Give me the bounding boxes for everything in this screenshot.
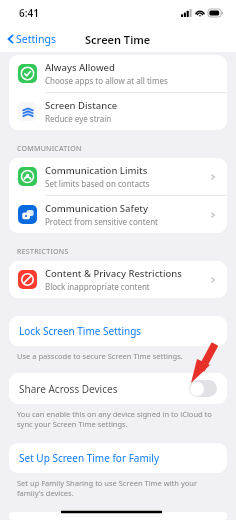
staticText: Communication Limits [45,164,148,177]
button[interactable]: Turn Off App & Website Activity [9,512,227,520]
button[interactable]: Screen Distance [9,93,227,130]
staticText: Set up Family Sharing to use Screen Time… [17,478,214,498]
button[interactable]: Settings [0,29,62,49]
button[interactable]: Always Allowed [9,55,227,92]
staticText: Set Up Screen Time for Family [19,451,160,465]
staticText: Screen Distance [45,99,118,112]
staticText: Lock Screen Time Settings [19,324,142,338]
button[interactable]: Set Up Screen Time for Family [9,443,227,473]
staticText: You can enable this on any device signed… [17,409,214,429]
staticText: Use a passcode to secure Screen Time set… [17,351,183,361]
button[interactable]: Lock Screen Time Settings [9,316,227,346]
staticText: 6:41 [19,6,39,20]
staticText: Set limits based on contacts [45,178,150,189]
button[interactable]: Communication Limits [9,158,227,195]
staticText: Reduce eye strain [45,113,112,124]
staticText: Block inappropriate content [45,281,150,292]
button[interactable]: Content & Privacy Restrictions [9,261,227,298]
button[interactable]: Communication Safety [9,196,227,233]
staticText: RESTRICTIONS [17,247,69,257]
other: Share Across Devices toggle [189,380,217,397]
staticText: Settings [16,32,56,46]
staticText: Communication Safety [45,202,148,215]
staticText: Share Across Devices [19,382,189,396]
button[interactable]: Share Across Devices [9,373,227,404]
staticText: Protect from sensitive content [45,216,158,227]
staticText: Always Allowed [45,61,115,74]
staticText: Choose apps to allow at all times [45,75,168,86]
staticText: Content & Privacy Restrictions [45,267,182,280]
staticText: Screen Time [85,32,151,47]
staticText: COMMUNICATION [17,144,82,154]
